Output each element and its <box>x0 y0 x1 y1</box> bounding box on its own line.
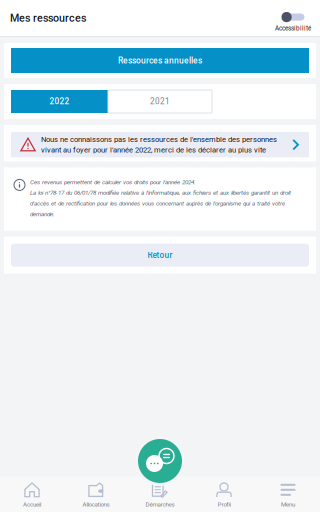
button[interactable]: Allocations <box>64 477 128 512</box>
button[interactable]: Menu <box>256 477 320 512</box>
staticText: 2021 <box>150 97 170 106</box>
button[interactable]: Profil <box>192 477 256 512</box>
staticText: Profil <box>217 501 230 508</box>
button[interactable]: Retour <box>11 244 309 267</box>
staticText: Accessibilité <box>275 25 311 32</box>
staticText: Accueil <box>23 501 41 508</box>
button[interactable]: Ressources annuelles <box>11 48 309 73</box>
staticText: Démarches <box>145 501 174 508</box>
staticText: Mes ressources <box>10 12 86 24</box>
staticText: Menu <box>281 501 295 508</box>
staticText: 2022 <box>49 97 69 106</box>
staticText: Allocations <box>82 501 109 508</box>
staticText: Nous ne connaissons pas les ressources d… <box>41 135 277 154</box>
button[interactable]: Démarches <box>128 477 192 512</box>
button[interactable]: 2022 <box>11 90 108 113</box>
button[interactable]: Accessibilité <box>275 0 311 37</box>
button[interactable]: Accueil <box>0 477 64 512</box>
staticText: Ces revenus permettent de calculer vos d… <box>30 178 291 218</box>
staticText: Ressources annuelles <box>118 55 202 65</box>
button[interactable]: Ouvrir le chat <box>135 436 185 486</box>
staticText: Retour <box>147 250 172 260</box>
button[interactable]: 2021 <box>108 90 212 113</box>
button[interactable]: Nous ne connaissons pas les ressources d… <box>11 132 309 157</box>
